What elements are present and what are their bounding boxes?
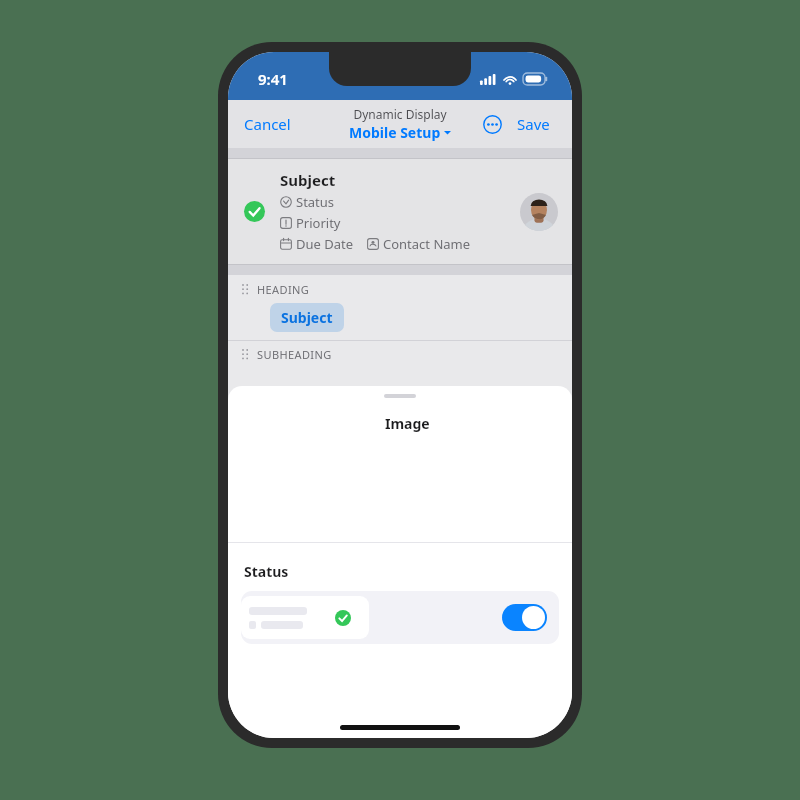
button[interactable]: Subject [228, 159, 572, 264]
staticText: Mobile Setup [349, 123, 441, 142]
button[interactable]: Dynamic Display [339, 102, 461, 146]
staticText: Subject [280, 170, 336, 190]
staticText: Contact Name [383, 235, 471, 253]
button[interactable]: Image [242, 409, 572, 447]
staticText: Due Date [296, 235, 354, 253]
button[interactable]: Status toggle, on [502, 604, 547, 631]
button[interactable]: Subject [270, 303, 344, 332]
staticText: Priority [296, 214, 341, 232]
staticText: Subject [281, 308, 333, 327]
staticText: Cancel [244, 114, 291, 134]
staticText: 9:41 [258, 69, 288, 89]
staticText: Status [244, 562, 289, 581]
staticText: HEADING [257, 282, 310, 297]
staticText: SUBHEADING [257, 347, 332, 362]
button[interactable]: Save [507, 104, 560, 144]
staticText: Save [517, 114, 550, 134]
staticText: Dynamic Display [353, 106, 447, 122]
button[interactable]: Cancel [228, 104, 307, 144]
button[interactable]: More options [477, 109, 507, 139]
button[interactable]: Status toggle, on [241, 591, 559, 644]
staticText: Status [296, 193, 335, 211]
staticText: Image [385, 414, 430, 433]
